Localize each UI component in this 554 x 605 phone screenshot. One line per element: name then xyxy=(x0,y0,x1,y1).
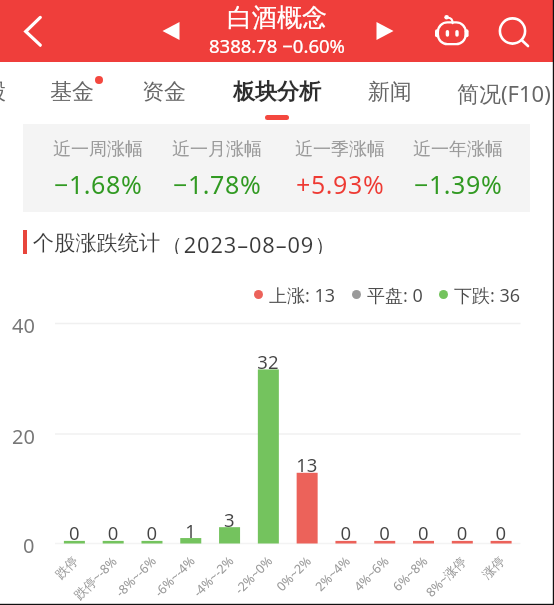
staticText: +5.93% xyxy=(296,167,385,201)
staticText: −1.39% xyxy=(414,167,503,201)
staticText: 基金 xyxy=(50,78,94,106)
staticText: −1.68% xyxy=(54,167,143,201)
button[interactable]: 简况(F10) xyxy=(454,63,554,121)
button[interactable]: 近一周涨幅 xyxy=(23,124,530,212)
staticText: 上涨: 13 xyxy=(269,283,336,305)
staticText: 板块分析 xyxy=(233,78,321,106)
staticText: −1.78% xyxy=(173,167,262,201)
staticText: 个股 xyxy=(0,78,6,106)
staticText: 近一月涨幅 xyxy=(172,138,262,161)
staticText: 白酒概念 xyxy=(227,2,327,33)
staticText: 个股涨跌统计 xyxy=(33,230,161,254)
staticText: 简况(F10) xyxy=(457,78,551,108)
button[interactable]: AI assistant xyxy=(428,9,472,53)
button[interactable]: Search xyxy=(490,8,536,54)
staticText: 近一季涨幅 xyxy=(295,138,385,161)
button[interactable]: 新闻 xyxy=(365,63,415,121)
button[interactable]: Next sector xyxy=(364,10,406,52)
button[interactable]: 资金 xyxy=(139,63,189,121)
button[interactable]: 板块分析 xyxy=(229,63,325,121)
staticText: （2023–08–09） xyxy=(161,230,337,254)
button[interactable]: 个股 xyxy=(0,63,8,121)
staticText: 近一年涨幅 xyxy=(413,138,503,161)
staticText: 近一周涨幅 xyxy=(53,138,143,161)
button[interactable]: Previous sector xyxy=(150,10,192,52)
staticText: 新闻 xyxy=(368,78,412,106)
button[interactable]: Back xyxy=(10,8,56,54)
button[interactable]: 基金 xyxy=(47,63,97,121)
staticText: 下跌: 36 xyxy=(454,283,521,305)
staticText: 资金 xyxy=(142,78,186,106)
staticText: 平盘: 0 xyxy=(367,283,423,305)
staticText: 8388.78 −0.60% xyxy=(209,33,345,58)
